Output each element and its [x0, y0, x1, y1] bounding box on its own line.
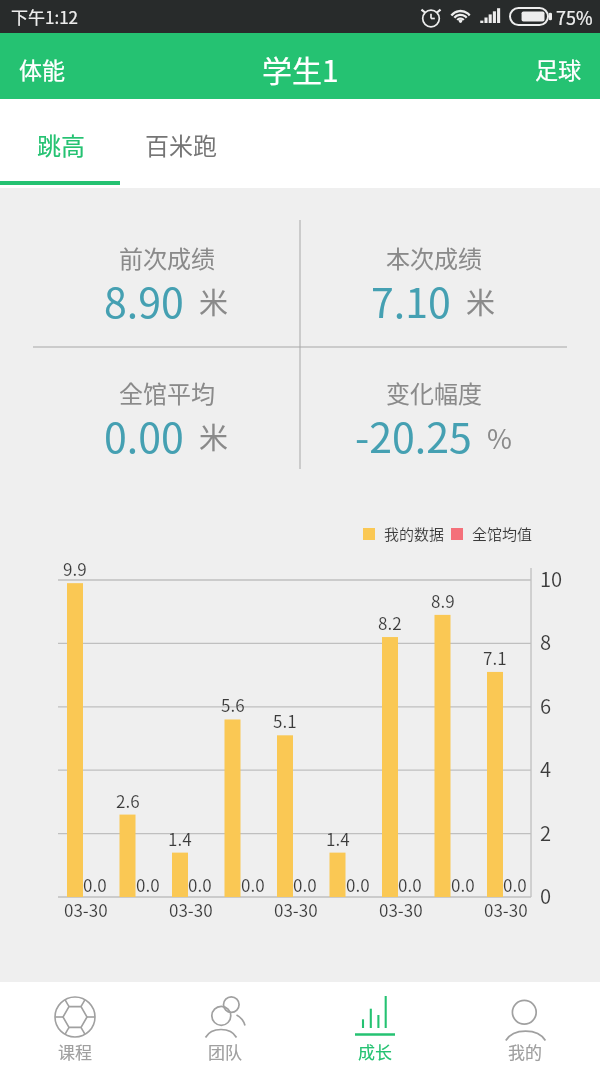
staticText: 0.0 — [451, 872, 475, 897]
button[interactable]: 体能 — [0, 33, 84, 99]
staticText: 课程 — [58, 1039, 92, 1064]
staticText: 足球 — [535, 52, 581, 85]
staticText: 5.1 — [273, 708, 297, 733]
staticText: 0.0 — [503, 872, 527, 897]
staticText: 03-30 — [169, 897, 213, 922]
staticText: 6 — [540, 691, 552, 715]
staticText: 学生1 — [262, 47, 339, 90]
staticText: 9.9 — [63, 556, 87, 581]
staticText: 米 — [199, 415, 229, 457]
staticText: 米 — [199, 280, 229, 322]
staticText: 全馆均值 — [472, 523, 533, 545]
staticText: 百米跑 — [145, 127, 217, 162]
staticText: 团队 — [208, 1039, 242, 1064]
staticText: 8.9 — [431, 588, 455, 613]
staticText: 7.10 — [371, 270, 451, 329]
button[interactable]: 跳高 — [0, 99, 120, 188]
staticText: 10 — [540, 564, 563, 588]
staticText: 米 — [466, 280, 496, 322]
staticText: 03-30 — [484, 897, 528, 922]
staticText: 8 — [540, 627, 552, 651]
button[interactable]: Growth — [300, 982, 450, 1067]
staticText: 0.0 — [188, 872, 212, 897]
staticText: 03-30 — [64, 897, 108, 922]
staticText: 本次成绩 — [386, 240, 482, 275]
staticText: 0.0 — [398, 872, 422, 897]
staticText: 7.1 — [483, 645, 507, 670]
button[interactable]: Courses — [0, 982, 150, 1067]
staticText: 2 — [540, 818, 552, 842]
staticText: 5.6 — [221, 692, 245, 717]
staticText: -20.25 — [355, 405, 472, 464]
staticText: 4 — [540, 754, 552, 778]
staticText: 0 — [540, 881, 552, 905]
staticText: 变化幅度 — [386, 375, 482, 410]
staticText: 前次成绩 — [119, 240, 215, 275]
staticText: 8.2 — [378, 610, 402, 635]
staticText: 75% — [556, 4, 593, 30]
staticText: 03-30 — [379, 897, 423, 922]
button[interactable]: 百米跑 — [120, 99, 255, 188]
staticText: % — [487, 418, 512, 457]
staticText: 成长 — [358, 1039, 392, 1064]
button[interactable]: Team — [150, 982, 300, 1067]
staticText: 0.0 — [346, 872, 370, 897]
staticText: 0.0 — [293, 872, 317, 897]
staticText: 0.0 — [136, 872, 160, 897]
staticText: 8.90 — [104, 270, 184, 329]
staticText: 体能 — [19, 52, 65, 85]
staticText: 03-30 — [274, 897, 318, 922]
staticText: 0.00 — [104, 405, 184, 464]
staticText: 0.0 — [241, 872, 265, 897]
button[interactable]: Profile — [450, 982, 600, 1067]
staticText: 全馆平均 — [119, 375, 215, 410]
staticText: 下午1:12 — [11, 4, 79, 29]
staticText: 我的 — [508, 1039, 542, 1064]
staticText: 0.0 — [83, 872, 107, 897]
staticText: 2.6 — [116, 788, 140, 813]
staticText: 1.4 — [326, 826, 350, 851]
staticText: 跳高 — [37, 127, 85, 162]
staticText: 1.4 — [168, 826, 192, 851]
button[interactable]: 足球 — [516, 33, 600, 99]
staticText: 我的数据 — [384, 523, 445, 545]
